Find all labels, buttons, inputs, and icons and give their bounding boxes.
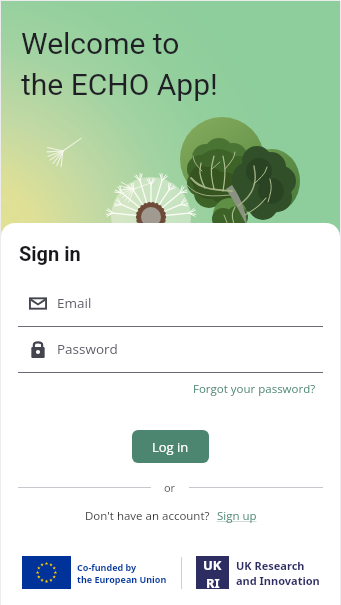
button[interactable]: Email bbox=[18, 294, 323, 327]
button[interactable]: Log in bbox=[132, 430, 209, 463]
button[interactable]: Password bbox=[18, 340, 323, 373]
staticText: Sign in bbox=[19, 242, 81, 265]
staticText: the ECHO App! bbox=[21, 67, 218, 102]
staticText: Password bbox=[57, 340, 118, 358]
button[interactable]: Forgot your password? bbox=[193, 381, 316, 397]
button[interactable]: Sign up bbox=[217, 508, 257, 524]
staticText: UK bbox=[203, 556, 222, 574]
staticText: RI bbox=[206, 574, 220, 589]
staticText: or bbox=[164, 480, 176, 494]
staticText: UK Research bbox=[236, 558, 305, 573]
staticText: Co-funded by bbox=[77, 561, 137, 573]
staticText: Welcome to bbox=[21, 26, 180, 61]
staticText: Don't have an account? bbox=[85, 508, 210, 524]
staticText: the European Union bbox=[77, 573, 167, 585]
staticText: Log in bbox=[152, 438, 189, 456]
staticText: Email bbox=[57, 294, 92, 312]
staticText: and Innovation bbox=[236, 573, 320, 588]
